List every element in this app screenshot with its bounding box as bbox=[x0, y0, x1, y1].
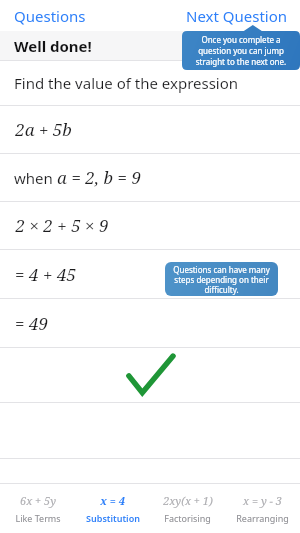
staticText: Factorising bbox=[164, 512, 211, 524]
staticText: Rearranging bbox=[236, 512, 289, 524]
staticText: 6x + 5y bbox=[20, 493, 56, 508]
staticText: a = 2, b = 9 bbox=[57, 166, 141, 189]
staticText: 2xy(x + 1) bbox=[163, 493, 213, 508]
staticText: = 49 bbox=[15, 312, 48, 335]
button[interactable]: 6x + 5y bbox=[0, 489, 75, 528]
staticText: when bbox=[14, 168, 57, 188]
button[interactable]: x = y − 3 bbox=[225, 489, 300, 528]
staticText: 2 × 2 + 5 × 9 bbox=[15, 214, 109, 237]
staticText: 2a + 5b bbox=[15, 118, 72, 141]
staticText: Substitution bbox=[86, 512, 140, 524]
button[interactable]: 2xy(x + 1) bbox=[150, 489, 225, 528]
button[interactable]: x = 4 bbox=[75, 489, 150, 528]
staticText: Find the value of the expression bbox=[14, 73, 239, 93]
staticText: Like Terms bbox=[15, 512, 61, 524]
staticText: Questions can have many steps depending … bbox=[165, 264, 278, 295]
staticText: x = 4 bbox=[100, 493, 125, 508]
staticText: x = y − 3 bbox=[243, 493, 282, 508]
staticText: Once you complete a question you can jum… bbox=[182, 34, 300, 67]
button[interactable]: Next Question bbox=[178, 2, 300, 30]
staticText: Well done! bbox=[14, 36, 92, 56]
staticText: = 4 + 45 bbox=[15, 263, 76, 286]
button[interactable]: Questions bbox=[0, 2, 94, 30]
